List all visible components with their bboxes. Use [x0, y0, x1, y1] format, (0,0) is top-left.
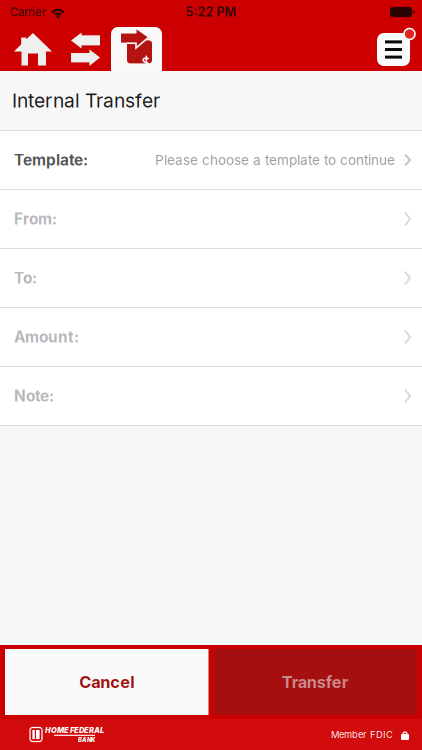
staticText: BANK — [78, 736, 95, 743]
button[interactable]: Amount: — [0, 308, 422, 367]
staticText: Member FDIC — [331, 729, 393, 740]
staticText: Carrier — [10, 5, 46, 19]
button[interactable]: To: — [0, 249, 422, 308]
staticText: HOME FEDERAL — [45, 726, 104, 735]
staticText: To: — [14, 269, 37, 287]
button[interactable]: Template: — [0, 131, 422, 190]
staticText: Amount: — [14, 328, 79, 346]
staticText: Please choose a template to continue — [155, 152, 395, 168]
staticText: Cancel — [79, 672, 134, 692]
staticText: 5:22 PM — [185, 4, 236, 20]
button[interactable]: From: — [0, 190, 422, 249]
button[interactable]: Note: — [0, 367, 422, 426]
button[interactable]: Home — [0, 23, 60, 73]
staticText: Template: — [14, 151, 88, 169]
button[interactable]: Transfers — [60, 22, 111, 73]
staticText: From: — [14, 210, 57, 228]
button[interactable]: Cancel — [5, 649, 208, 715]
staticText: Internal Transfer — [12, 89, 160, 112]
button[interactable]: Internal Transfer — [111, 26, 162, 73]
button[interactable]: Menu — [376, 27, 422, 73]
staticText: Note: — [14, 387, 54, 405]
button[interactable]: Transfer — [213, 649, 417, 715]
staticText: Transfer — [282, 672, 349, 692]
